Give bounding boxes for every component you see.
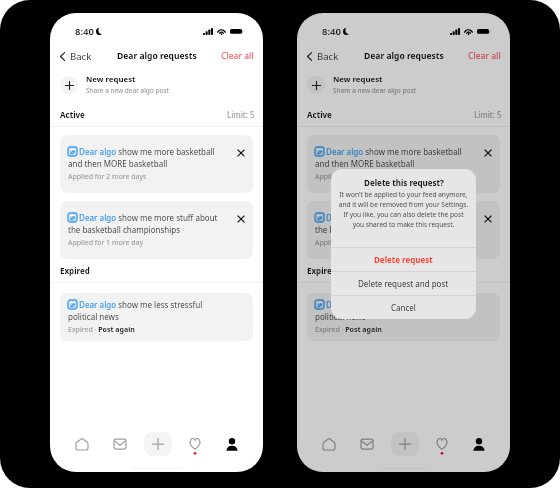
staticText: It won't be applied to your feed anymore… — [337, 190, 470, 229]
staticText: Clear all — [221, 50, 254, 62]
button[interactable]: Delete request and post — [331, 272, 476, 295]
button[interactable]: Back — [297, 47, 345, 66]
button[interactable]: Create — [139, 427, 176, 461]
button[interactable]: Home — [310, 427, 348, 461]
button[interactable]: # Dear algo show me more stuff about the… — [60, 201, 253, 259]
button[interactable]: Profile — [460, 427, 497, 461]
button[interactable]: Messages — [348, 427, 386, 461]
staticText: Dear algo requests — [117, 50, 197, 62]
button[interactable]: # Dear algo show me less stressful polit… — [307, 293, 500, 341]
staticText: 8:40 — [322, 25, 341, 38]
button[interactable]: Cancel — [331, 296, 476, 319]
staticText: Applied for 1 more day — [68, 238, 144, 248]
staticText: Active — [60, 109, 85, 120]
staticText: Back — [70, 50, 92, 63]
staticText: Expired — [60, 265, 90, 276]
button[interactable]: Likes — [423, 427, 460, 461]
staticText: Applied for 1 more day — [315, 238, 391, 248]
button[interactable]: Profile — [213, 427, 250, 461]
staticText: Cancel — [391, 302, 416, 313]
staticText: Expired · Post again — [315, 325, 382, 335]
staticText: # Dear algo show me less stressful polit… — [68, 299, 227, 322]
button[interactable]: Likes — [176, 427, 213, 461]
staticText: Back — [317, 50, 339, 63]
staticText: Clear all — [468, 50, 501, 62]
button[interactable]: Clear all — [459, 47, 510, 65]
staticText: # Dear algo show me more stuff about the… — [68, 212, 227, 235]
staticText: # Dear algo show me more basketball and … — [315, 146, 474, 169]
button[interactable]: New request — [297, 70, 510, 101]
staticText: Active — [307, 109, 332, 120]
button[interactable]: Back — [50, 47, 98, 66]
staticText: 8:40 — [75, 25, 94, 38]
button[interactable]: Remove request — [480, 211, 496, 227]
button[interactable]: # Dear algo show me more stuff about the… — [307, 201, 500, 259]
staticText: Expired · Post again — [68, 325, 135, 335]
staticText: Share a new dear algo post — [333, 86, 416, 95]
button[interactable]: Remove request — [233, 211, 249, 227]
staticText: New request — [333, 74, 383, 85]
staticText: Share a new dear algo post — [86, 86, 169, 95]
button[interactable]: # Dear algo show me less stressful polit… — [60, 293, 253, 341]
staticText: Delete this request? — [364, 177, 444, 188]
staticText: Delete request — [374, 254, 433, 265]
staticText: Delete request and post — [358, 278, 449, 289]
button[interactable]: Remove request — [233, 145, 249, 161]
button[interactable]: Create — [386, 427, 423, 461]
button[interactable]: Messages — [101, 427, 139, 461]
staticText: # Dear algo show me more basketball and … — [68, 146, 227, 169]
staticText: Applied for 2 more days — [68, 172, 147, 182]
button[interactable]: # Dear algo show me more basketball and … — [307, 135, 500, 193]
staticText: Limit: 5 — [227, 109, 255, 120]
button[interactable]: Home — [63, 427, 101, 461]
staticText: Limit: 5 — [474, 109, 502, 120]
button[interactable]: Remove request — [480, 145, 496, 161]
staticText: Expired — [307, 265, 337, 276]
staticText: New request — [86, 74, 136, 85]
button[interactable]: # Dear algo show me more basketball and … — [60, 135, 253, 193]
staticText: # Dear algo show me less stressful polit… — [315, 299, 474, 322]
staticText: Applied for 2 more days — [315, 172, 394, 182]
button[interactable]: Delete request — [331, 248, 476, 271]
staticText: # Dear algo show me more stuff about the… — [315, 212, 474, 235]
button[interactable]: Clear all — [212, 47, 263, 65]
button[interactable]: New request — [50, 70, 263, 101]
staticText: Dear algo requests — [364, 50, 444, 62]
